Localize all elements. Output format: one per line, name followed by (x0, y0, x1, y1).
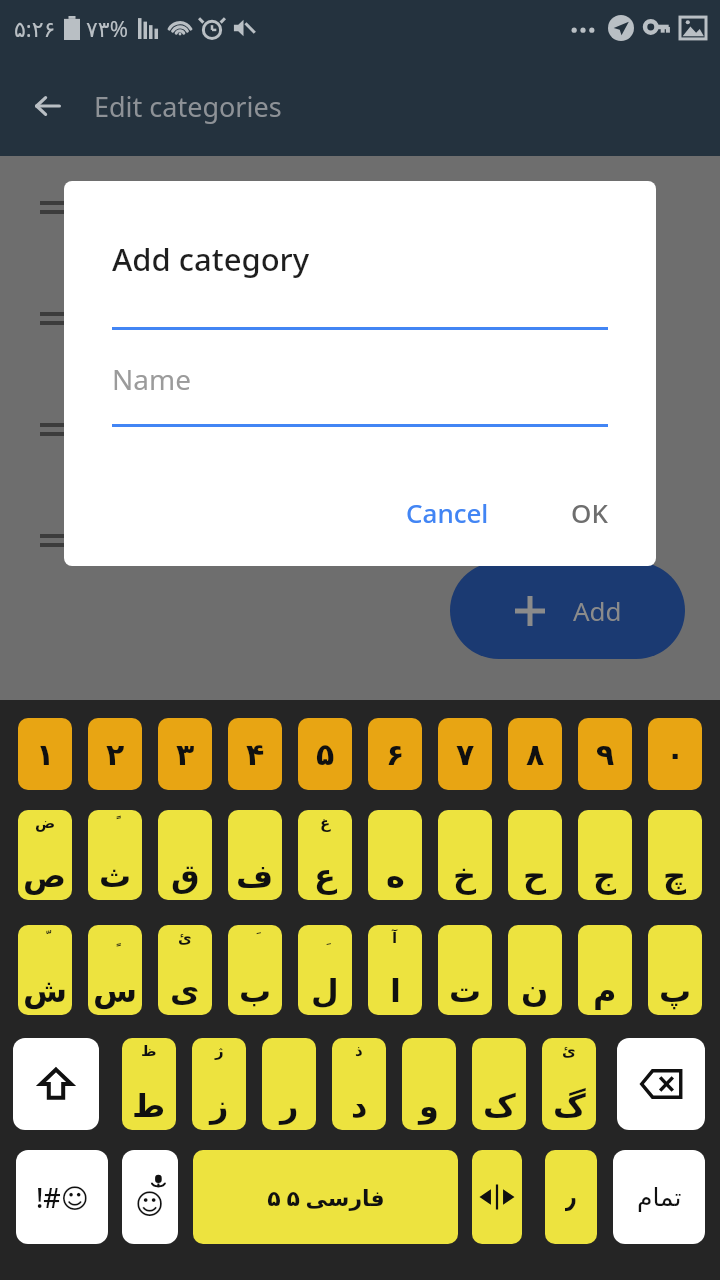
button[interactable]: ۰ (648, 718, 702, 790)
staticText: Name (112, 360, 191, 398)
button[interactable]: ِ (298, 925, 352, 1015)
staticText: ۷ (456, 737, 475, 772)
staticText: Edit categories (94, 88, 282, 125)
button[interactable]: و (402, 1038, 456, 1130)
button[interactable]: ٍ (88, 925, 142, 1015)
button[interactable]: Symbols (16, 1150, 108, 1244)
staticText: ه (386, 857, 405, 894)
button[interactable]: ئ (158, 925, 212, 1015)
button[interactable]: ف (228, 810, 282, 900)
button[interactable]: ۹ (578, 718, 632, 790)
button[interactable]: ض (18, 810, 72, 900)
staticText: ع (314, 857, 336, 894)
staticText: آ (392, 929, 398, 946)
staticText: ٫ (565, 1180, 577, 1215)
staticText: ۹ (596, 737, 615, 772)
staticText: گ (553, 1087, 586, 1124)
staticText: ئ (178, 929, 192, 946)
staticText: ۸ (526, 737, 545, 772)
button[interactable]: ت (438, 925, 492, 1015)
staticText: Cancel (406, 495, 489, 530)
button[interactable]: ۵ (298, 718, 352, 790)
staticText: ۷۳% (86, 13, 128, 43)
staticText: Add (573, 593, 622, 628)
staticText: خ (453, 857, 477, 894)
staticText: و (419, 1087, 439, 1124)
staticText: ص (23, 857, 67, 894)
staticText: ح (523, 857, 547, 894)
staticText: ۶ (386, 737, 405, 772)
button[interactable]: ق (158, 810, 212, 900)
button[interactable]: ج (578, 810, 632, 900)
button[interactable]: ً (88, 810, 142, 900)
button[interactable]: ّ (18, 925, 72, 1015)
button[interactable]: ه (368, 810, 422, 900)
staticText: ق (171, 857, 200, 894)
staticText: Add category (112, 238, 310, 280)
button[interactable]: َ (228, 925, 282, 1015)
staticText: ۱ (36, 737, 55, 772)
button[interactable]: پ (648, 925, 702, 1015)
button[interactable]: ژ (192, 1038, 246, 1130)
staticText: ۴ (246, 737, 265, 772)
staticText: م (593, 972, 617, 1009)
button[interactable]: ظ (122, 1038, 176, 1130)
staticText: ۵:۲۶ (14, 13, 56, 43)
button[interactable]: Cancel (390, 483, 505, 542)
staticText: ف (236, 857, 274, 894)
staticText: ب (239, 972, 272, 1009)
button[interactable]: Shift (13, 1038, 99, 1130)
staticText: س (93, 972, 138, 1009)
staticText: ژ (215, 1042, 224, 1059)
button[interactable]: ۸ (508, 718, 562, 790)
staticText: ن (521, 972, 549, 1009)
staticText: ئ (562, 1042, 576, 1059)
staticText: ۲ (106, 737, 125, 772)
staticText: ج (593, 857, 617, 894)
staticText: ش (23, 972, 68, 1009)
button[interactable]: ۶ (368, 718, 422, 790)
button[interactable]: ذ (332, 1038, 386, 1130)
staticText: غ (320, 814, 331, 831)
button[interactable]: چ (648, 810, 702, 900)
staticText: ک (483, 1087, 516, 1124)
button[interactable]: ٫ (545, 1150, 597, 1244)
staticText: ض (35, 814, 56, 831)
button[interactable]: ر (262, 1038, 316, 1130)
button[interactable]: Add (450, 562, 685, 659)
button[interactable]: ن (508, 925, 562, 1015)
staticText: ز (210, 1087, 229, 1124)
button[interactable]: ح (508, 810, 562, 900)
staticText: چ (663, 857, 687, 894)
button[interactable]: Backspace (617, 1038, 705, 1130)
staticText: ت (449, 972, 482, 1009)
button[interactable]: Space (193, 1150, 458, 1244)
staticText: !#☺ (36, 1179, 89, 1216)
button[interactable]: ئ (542, 1038, 596, 1130)
button[interactable]: ۷ (438, 718, 492, 790)
button[interactable]: م (578, 925, 632, 1015)
staticText: ی (170, 972, 200, 1009)
button[interactable]: غ (298, 810, 352, 900)
staticText: ظ (141, 1042, 157, 1059)
staticText: ۳ (176, 737, 195, 772)
staticText: ث (99, 857, 132, 894)
button[interactable]: ۳ (158, 718, 212, 790)
button[interactable]: تمام (613, 1150, 705, 1244)
button[interactable]: ک (472, 1038, 526, 1130)
button[interactable]: Move cursor (472, 1150, 522, 1244)
staticText: ا (390, 972, 401, 1009)
button[interactable]: ۲ (88, 718, 142, 790)
staticText: ط (132, 1087, 166, 1124)
staticText: ل (311, 972, 339, 1009)
staticText: OK (571, 495, 608, 530)
button[interactable]: Back (20, 78, 76, 134)
button[interactable]: ۴ (228, 718, 282, 790)
button[interactable]: آ (368, 925, 422, 1015)
staticText: ذ (355, 1042, 363, 1059)
button[interactable]: ۱ (18, 718, 72, 790)
button[interactable]: OK (555, 483, 624, 542)
button[interactable]: خ (438, 810, 492, 900)
staticText: ۰ (666, 737, 685, 772)
button[interactable]: Emoji and voice input (122, 1150, 178, 1244)
